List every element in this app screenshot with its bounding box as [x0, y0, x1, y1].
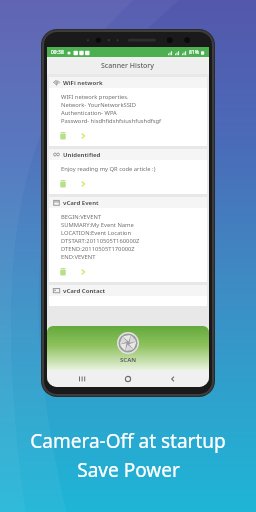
staticText: Authentication- WPA — [61, 109, 117, 117]
staticText: vCard Event — [63, 199, 99, 207]
staticText: vCard Contact — [63, 287, 106, 295]
staticText: DTEND:20110505T170000Z — [61, 245, 135, 253]
staticText: 09:38 — [51, 49, 64, 56]
staticText: Enjoy reading my QR code article :) — [61, 165, 156, 173]
staticText: Password- hisdhfidshfsiushfushdfsgf — [61, 117, 162, 125]
staticText: 81% — [189, 49, 199, 56]
button[interactable]: Open details — [77, 266, 89, 278]
button[interactable]: Delete — [57, 266, 69, 278]
button[interactable]: Recents — [74, 370, 92, 387]
staticText: SUMMARY:My Event Name — [61, 221, 134, 229]
staticText: Save Power — [77, 457, 180, 483]
staticText: DTSTART:20110505T160000Z — [61, 237, 140, 245]
staticText: Camera-Off at startup — [30, 428, 226, 454]
button[interactable]: vCard Event — [49, 197, 207, 282]
button[interactable]: Open details — [77, 178, 89, 190]
button[interactable]: WiFi network — [49, 77, 207, 146]
staticText: WiFi network — [63, 79, 103, 87]
button[interactable]: Back — [164, 370, 182, 387]
button[interactable]: Unidentified — [49, 149, 207, 194]
button[interactable]: vCard Contact — [49, 285, 207, 306]
staticText: Network- YourNetworkSSID — [61, 101, 137, 109]
staticText: LOCATION:Event Location — [61, 229, 131, 237]
button[interactable]: Open details — [77, 130, 89, 142]
staticText: Unidentified — [63, 151, 101, 159]
staticText: Scanner History — [101, 61, 155, 71]
staticText: WIFI network properties. — [61, 93, 129, 101]
staticText: END:VEVENT — [61, 253, 96, 261]
staticText: BEGIN:VEVENT — [61, 213, 102, 221]
button[interactable]: Home — [119, 370, 137, 387]
button[interactable]: Delete — [57, 178, 69, 190]
button[interactable]: Scan — [47, 326, 209, 370]
button[interactable]: Delete — [57, 130, 69, 142]
staticText: SCAN — [120, 356, 137, 364]
